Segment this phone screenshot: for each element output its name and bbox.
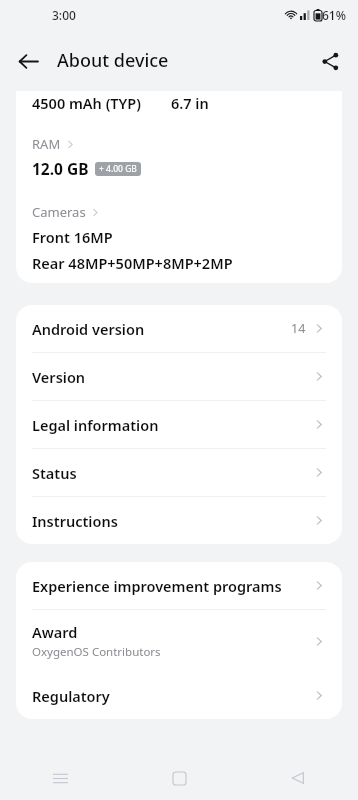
button[interactable]: Version <box>16 353 342 400</box>
staticText: Status <box>32 463 77 483</box>
button[interactable]: Home <box>155 756 203 800</box>
staticText: + 4.00 GB <box>99 163 137 175</box>
button[interactable]: Share <box>312 43 348 79</box>
staticText: Award <box>32 622 78 642</box>
staticText: 3:00 <box>52 7 76 23</box>
button[interactable]: Cameras <box>32 203 103 221</box>
staticText: Legal information <box>32 415 159 435</box>
staticText: 61% <box>322 7 346 23</box>
staticText: Android version <box>32 319 145 339</box>
button[interactable]: Status <box>16 449 342 496</box>
staticText: 6.7 in <box>171 93 209 113</box>
staticText: About device <box>57 48 169 73</box>
staticText: Version <box>32 367 86 387</box>
staticText: Front 16MP <box>32 227 113 247</box>
staticText: OxygenOS Contributors <box>32 644 161 660</box>
button[interactable]: Legal information <box>16 401 342 448</box>
staticText: Instructions <box>32 511 118 531</box>
staticText: 14 <box>291 320 306 337</box>
staticText: Cameras <box>32 203 86 221</box>
staticText: Rear 48MP+50MP+8MP+2MP <box>32 253 233 273</box>
button[interactable]: Android version <box>16 305 342 352</box>
button[interactable]: RAM <box>32 135 78 153</box>
button[interactable]: Instructions <box>16 497 342 544</box>
staticText: 4500 mAh (TYP) <box>32 93 141 113</box>
button[interactable]: Regulatory <box>16 672 342 719</box>
button[interactable]: Experience improvement programs <box>16 562 342 609</box>
button[interactable]: Recents <box>36 756 84 800</box>
staticText: 12.0 GB <box>32 158 89 179</box>
button[interactable]: Back <box>10 43 46 79</box>
staticText: Experience improvement programs <box>32 576 282 596</box>
staticText: Regulatory <box>32 686 110 706</box>
staticText: RAM <box>32 135 61 153</box>
button[interactable]: Back <box>274 756 322 800</box>
button[interactable]: Award <box>16 610 342 672</box>
